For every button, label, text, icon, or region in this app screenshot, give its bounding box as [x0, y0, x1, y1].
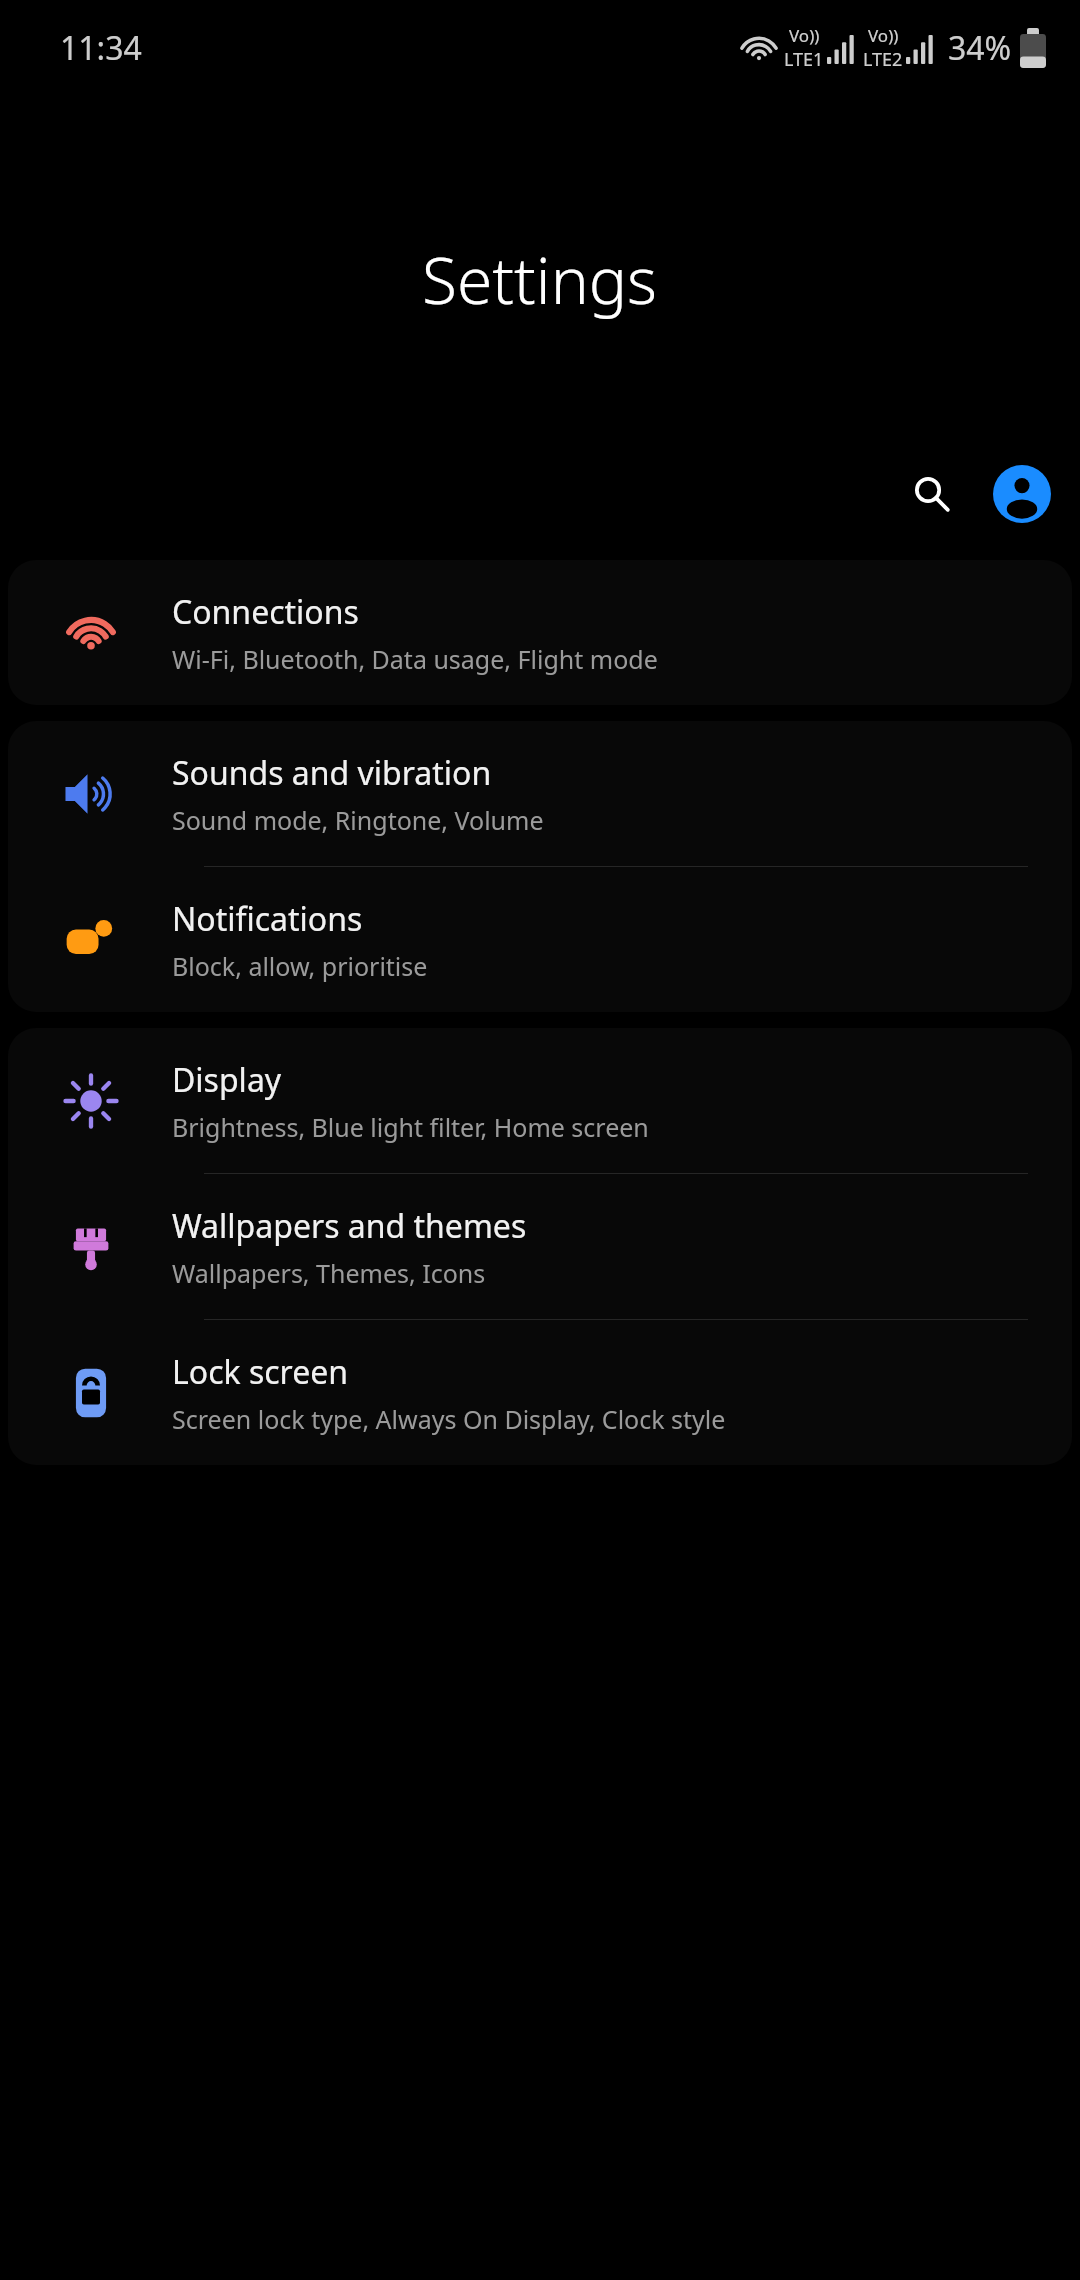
staticText: 11:34: [60, 26, 142, 70]
staticText: Sounds and vibration: [172, 751, 492, 795]
staticText: LTE2: [863, 47, 903, 72]
staticText: Sound mode, Ringtone, Volume: [172, 803, 544, 837]
button[interactable]: Notifications: [8, 867, 1072, 1012]
staticText: Vo)): [868, 24, 899, 47]
staticText: Screen lock type, Always On Display, Clo…: [172, 1402, 726, 1436]
button[interactable]: Lock screen: [8, 1320, 1072, 1465]
staticText: Brightness, Blue light filter, Home scre…: [172, 1110, 649, 1144]
button[interactable]: Sounds and vibration: [8, 721, 1072, 866]
staticText: 34%: [948, 26, 1012, 70]
staticText: Display: [172, 1058, 282, 1102]
staticText: LTE1: [784, 47, 824, 72]
staticText: Wi-Fi, Bluetooth, Data usage, Flight mod…: [172, 642, 658, 676]
staticText: Wallpapers, Themes, Icons: [172, 1256, 486, 1290]
staticText: Block, allow, prioritise: [172, 949, 428, 983]
staticText: Vo)): [789, 24, 820, 47]
staticText: Settings: [422, 236, 658, 323]
staticText: Notifications: [172, 897, 363, 941]
staticText: Connections: [172, 590, 359, 634]
button[interactable]: Search: [894, 456, 970, 532]
staticText: Lock screen: [172, 1350, 349, 1394]
button[interactable]: Display: [8, 1028, 1072, 1173]
staticText: Wallpapers and themes: [172, 1204, 527, 1248]
button[interactable]: Wallpapers and themes: [8, 1174, 1072, 1319]
button[interactable]: Account: [984, 456, 1060, 532]
button[interactable]: Connections: [8, 560, 1072, 705]
